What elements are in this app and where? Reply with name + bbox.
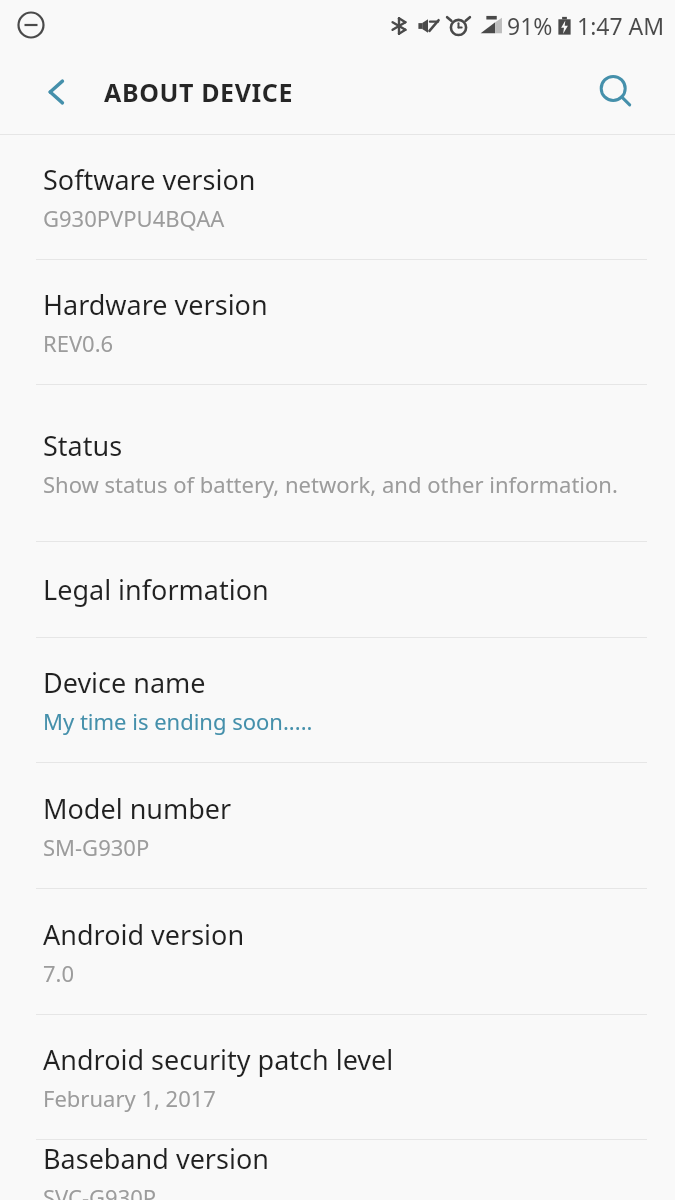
staticText: 7.0 [43,958,75,988]
staticText: Software version [43,161,256,198]
staticText: SVC-G930P [43,1182,157,1200]
button[interactable]: Android version [0,889,675,1014]
staticText: REV0.6 [43,328,114,358]
staticText: Device name [43,664,206,701]
staticText: Status [43,427,123,464]
staticText: Legal information [43,571,269,608]
staticText: G930PVPU4BQAA [43,203,225,233]
staticText: Baseband version [43,1140,269,1177]
button[interactable]: Software version [0,135,675,259]
button[interactable]: Baseband version [0,1140,675,1200]
button[interactable]: Device name [0,638,675,762]
staticText: Hardware version [43,286,268,323]
button[interactable]: Navigate up [24,59,90,125]
button[interactable]: Model number [0,763,675,888]
staticText: 1:47 AM [577,10,665,41]
staticText: February 1, 2017 [43,1083,216,1113]
staticText: 91% [507,10,553,41]
staticText: Show status of battery, network, and oth… [43,469,618,499]
staticText: Android version [43,916,245,953]
button[interactable]: Status [0,385,675,541]
staticText: My time is ending soon..... [43,706,313,736]
staticText: SM-G930P [43,832,150,862]
button[interactable]: Android security patch level [0,1015,675,1139]
button[interactable]: Legal information [0,542,675,637]
button[interactable]: Search [585,61,647,123]
staticText: Android security patch level [43,1041,394,1078]
staticText: ABOUT DEVICE [104,75,294,109]
button[interactable]: Hardware version [0,260,675,384]
staticText: Model number [43,790,232,827]
